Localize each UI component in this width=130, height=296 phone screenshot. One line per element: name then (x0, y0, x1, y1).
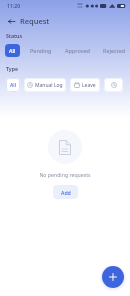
button[interactable]: Add (53, 185, 78, 199)
staticText: Request (20, 16, 50, 26)
button[interactable]: Back (4, 14, 18, 28)
staticText: All (9, 47, 16, 54)
staticText: Leave (82, 82, 96, 89)
button[interactable]: All (5, 44, 20, 57)
button[interactable] (104, 78, 123, 92)
staticText: All (10, 82, 16, 89)
button[interactable]: Leave (70, 78, 100, 92)
button[interactable]: Pending (26, 44, 56, 57)
staticText: Rejected (103, 47, 126, 54)
staticText: Type (6, 65, 18, 72)
button[interactable]: Add request (102, 266, 124, 288)
staticText: No pending requests (0, 171, 130, 178)
staticText: Manual Log (35, 82, 63, 89)
button[interactable]: Rejected (99, 44, 130, 57)
staticText: Pending (30, 47, 52, 54)
button[interactable]: Approved (61, 44, 94, 57)
staticText: Approved (65, 47, 90, 54)
staticText: Status (6, 32, 22, 39)
button[interactable]: Manual Log (24, 78, 66, 92)
staticText: Add (61, 189, 71, 196)
staticText: 11:20 (7, 2, 21, 9)
button[interactable]: All (6, 78, 20, 92)
